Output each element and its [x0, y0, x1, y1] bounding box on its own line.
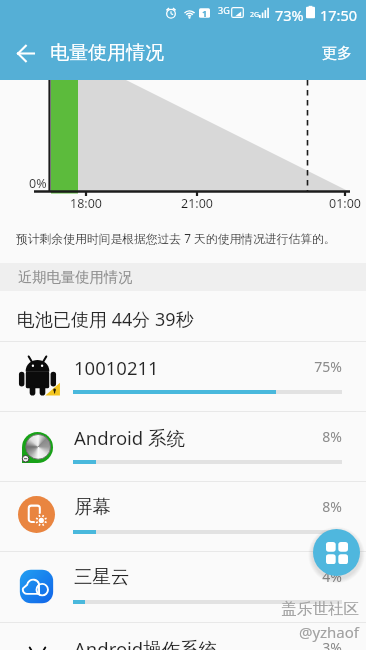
staticText: 2G	[250, 10, 260, 20]
staticText: 电池已使用 44分 39秒	[17, 307, 194, 332]
staticText: 0%	[29, 175, 47, 192]
button[interactable]: 10010211	[0, 341, 366, 411]
button[interactable]: 更多	[308, 32, 366, 75]
button[interactable]: 三星云	[0, 551, 366, 621]
staticText: 盖乐世社区	[259, 599, 359, 619]
staticText: 75%	[260, 357, 342, 376]
staticText: 三星云	[74, 565, 130, 588]
staticText: Android操作系统	[74, 636, 218, 650]
staticText: 预计剩余使用时间是根据您过去 7 天的使用情况进行估算的。	[16, 230, 336, 246]
staticText: 73%	[275, 5, 304, 25]
staticText: 3G	[218, 4, 230, 16]
staticText: 1	[202, 7, 208, 19]
button[interactable]: Android操作系统	[0, 622, 366, 650]
staticText: 屏幕	[74, 495, 111, 518]
staticText: 18:00	[56, 195, 116, 212]
button[interactable]: 返回	[5, 33, 45, 73]
button[interactable]: Android 系统	[0, 411, 366, 481]
button[interactable]: 屏幕	[0, 481, 366, 551]
staticText: @yzhaof	[259, 622, 359, 642]
staticText: 01:00	[315, 195, 366, 212]
staticText: 8%	[260, 497, 342, 516]
button[interactable]: 应用列表	[313, 529, 360, 576]
staticText: 10010211	[74, 355, 159, 380]
staticText: 4%	[260, 567, 342, 586]
staticText: 17:50	[320, 5, 358, 25]
staticText: 近期电量使用情况	[18, 268, 133, 286]
staticText: 电量使用情况	[50, 41, 164, 65]
staticText: 21:00	[167, 195, 227, 212]
staticText: Android 系统	[74, 425, 186, 450]
staticText: 8%	[260, 427, 342, 446]
staticText: 更多	[322, 44, 352, 63]
staticText: 3%	[260, 638, 342, 650]
